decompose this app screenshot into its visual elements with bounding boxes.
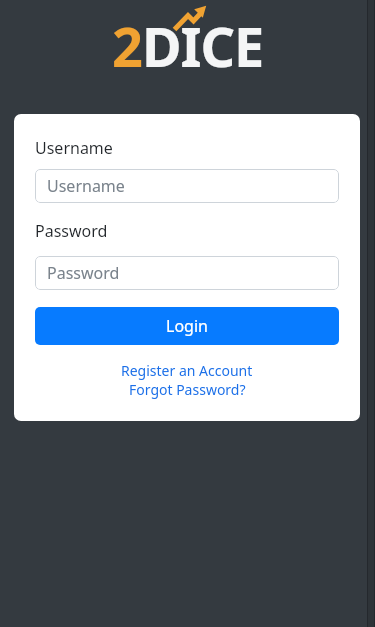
button[interactable]: Login bbox=[35, 307, 339, 345]
button[interactable]: Forgot Password? bbox=[129, 380, 246, 399]
staticText: Password bbox=[47, 262, 120, 284]
staticText: Username bbox=[47, 175, 125, 197]
button[interactable]: Register an Account bbox=[121, 361, 253, 380]
button[interactable]: Username bbox=[35, 169, 339, 203]
staticText: Login bbox=[166, 315, 208, 337]
staticText: Username bbox=[35, 137, 113, 159]
button[interactable]: Password bbox=[35, 256, 339, 290]
staticText: 2DICE bbox=[112, 9, 264, 83]
staticText: Password bbox=[35, 220, 108, 242]
